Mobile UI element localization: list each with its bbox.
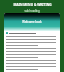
staticText: Welcome back [22, 20, 42, 24]
button[interactable]: MAIN MENU & WRITING [0, 0, 64, 13]
staticText: MAIN MENU & WRITING [13, 3, 52, 7]
staticText: sub heading [24, 9, 40, 13]
